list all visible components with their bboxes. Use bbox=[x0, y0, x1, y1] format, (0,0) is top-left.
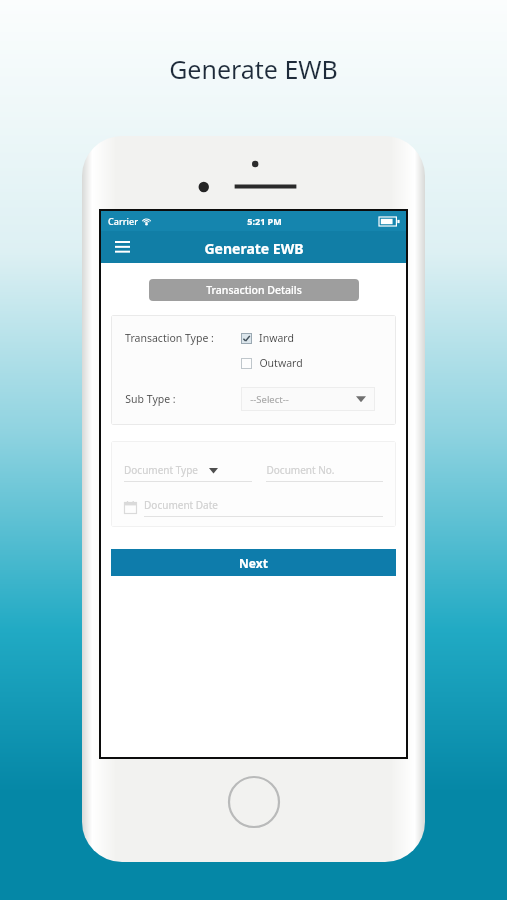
staticText: Generate EWB bbox=[169, 52, 338, 86]
staticText: Outward bbox=[259, 356, 303, 370]
button[interactable]: Document No. bbox=[266, 463, 383, 482]
staticText: Inward bbox=[259, 331, 294, 345]
staticText: --Select-- bbox=[250, 393, 289, 406]
staticText: Carrier bbox=[108, 215, 138, 227]
staticText: Generate EWB bbox=[204, 239, 304, 258]
staticText: Next bbox=[239, 555, 268, 571]
button[interactable]: --Select-- bbox=[241, 387, 375, 411]
button[interactable]: Document Type bbox=[124, 463, 252, 482]
button[interactable]: Next bbox=[111, 549, 396, 576]
button[interactable]: Document Date bbox=[124, 498, 383, 517]
staticText: 5:21 PM bbox=[247, 215, 282, 227]
staticText: Sub Type : bbox=[125, 392, 176, 406]
staticText: Transaction Details bbox=[206, 283, 302, 297]
staticText: Document Type bbox=[124, 463, 198, 477]
staticText: Document Date bbox=[144, 498, 218, 512]
staticText: Transaction Type : bbox=[125, 331, 214, 345]
button[interactable]: Open navigation menu bbox=[109, 234, 135, 260]
button[interactable]: Outward bbox=[241, 356, 303, 370]
button[interactable]: Inward bbox=[241, 331, 294, 345]
button[interactable]: Transaction Details bbox=[149, 279, 359, 301]
staticText: Document No. bbox=[266, 463, 335, 477]
